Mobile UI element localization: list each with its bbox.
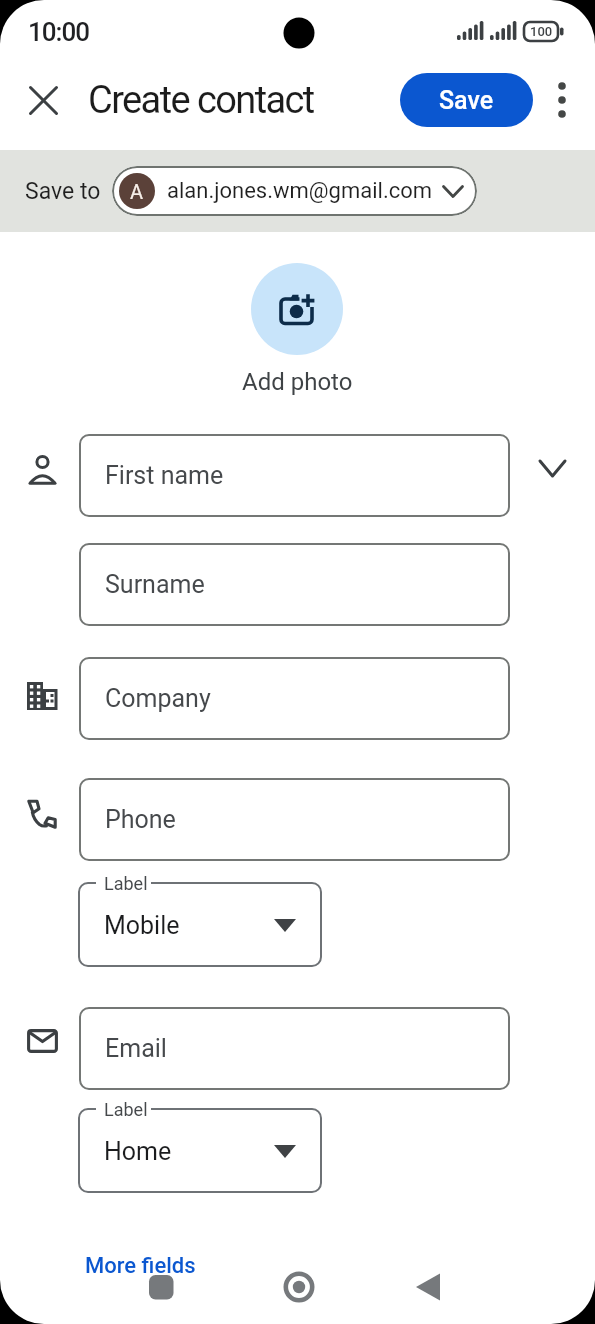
button[interactable]: More fields (80, 1248, 201, 1284)
button[interactable]: A (112, 166, 477, 216)
staticText: Create contact (88, 78, 314, 123)
button[interactable]: First name (79, 434, 510, 517)
staticText: Label (104, 1099, 148, 1120)
staticText: 10:00 (28, 17, 90, 47)
staticText: First name (105, 461, 224, 490)
button[interactable] (538, 76, 586, 124)
button[interactable] (137, 1263, 185, 1311)
button[interactable]: Email (79, 1007, 510, 1090)
staticText: Label (104, 873, 148, 894)
staticText: Company (105, 684, 211, 713)
staticText: Save to (25, 178, 101, 205)
staticText: Save (439, 86, 494, 115)
button[interactable] (525, 441, 579, 495)
button[interactable] (251, 263, 343, 355)
button[interactable]: Mobile (79, 883, 321, 967)
button[interactable]: Home (79, 1109, 321, 1193)
staticText: Mobile (104, 911, 180, 940)
staticText: 100 (530, 24, 553, 39)
staticText: Add photo (242, 368, 353, 396)
staticText: alan.jones.wm@gmail.com (167, 178, 433, 204)
button[interactable] (19, 76, 67, 124)
staticText: Surname (105, 570, 205, 599)
staticText: Email (105, 1034, 167, 1063)
button[interactable] (275, 1263, 323, 1311)
button[interactable]: Surname (79, 543, 510, 626)
staticText: More fields (85, 1253, 196, 1279)
button[interactable]: Save (400, 73, 533, 127)
staticText: Home (104, 1137, 172, 1166)
button[interactable] (404, 1263, 452, 1311)
staticText: Phone (105, 805, 176, 834)
button[interactable]: Company (79, 657, 510, 740)
staticText: A (130, 180, 144, 203)
button[interactable]: Phone (79, 778, 510, 861)
